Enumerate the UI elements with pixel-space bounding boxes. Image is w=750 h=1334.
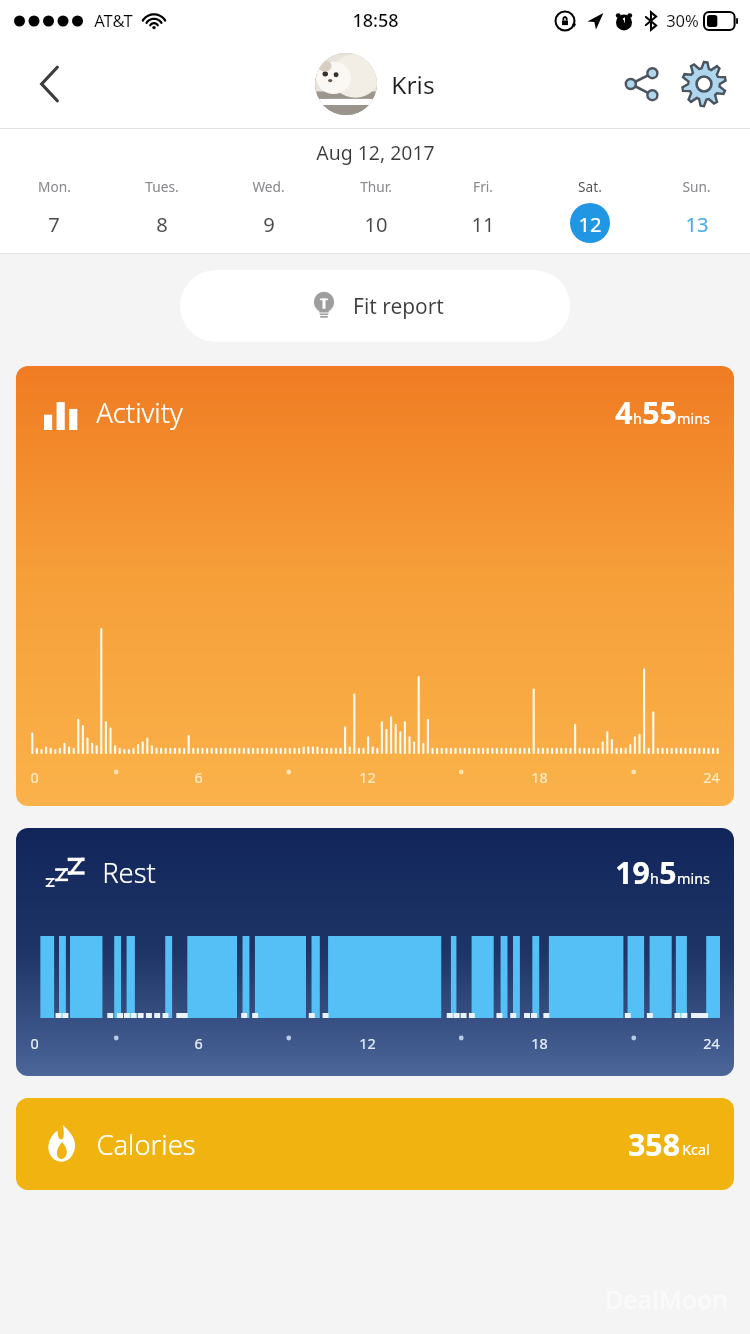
button[interactable]: Activity <box>16 366 734 806</box>
staticText: mins <box>677 869 710 889</box>
staticText: 24 <box>703 1034 720 1054</box>
button[interactable]: Mon. <box>0 177 108 243</box>
staticText: Kris <box>391 68 435 101</box>
staticText: 8 <box>156 210 168 237</box>
staticText: 24 <box>703 768 720 788</box>
staticText: Mon. <box>38 177 71 196</box>
staticText: 6 <box>194 768 203 788</box>
staticText: 12 <box>359 768 376 788</box>
staticText: Activity <box>96 394 183 431</box>
button[interactable]: Sun. <box>643 177 750 243</box>
button[interactable]: Fit report <box>180 270 570 342</box>
staticText: Tues. <box>145 177 179 196</box>
staticText: 19 <box>615 852 650 893</box>
button[interactable]: Back <box>22 56 78 112</box>
staticText: Sun. <box>682 177 711 196</box>
button[interactable]: Settings <box>674 54 734 114</box>
staticText: 0 <box>30 1034 39 1054</box>
staticText: Aug 12, 2017 <box>316 139 435 165</box>
staticText: Rest <box>102 854 156 891</box>
staticText: 9 <box>263 210 275 237</box>
staticText: 12 <box>578 210 602 237</box>
button[interactable]: Thur. <box>322 177 429 243</box>
staticText: 18 <box>531 1034 548 1054</box>
button[interactable]: Fri. <box>429 177 536 243</box>
staticText: 55 <box>642 392 677 433</box>
button[interactable]: Share <box>614 56 670 112</box>
staticText: 11 <box>471 210 495 237</box>
button[interactable]: Calories <box>16 1098 734 1190</box>
staticText: Calories <box>96 1126 196 1163</box>
staticText: Fit report <box>353 292 444 320</box>
staticText: mins <box>677 409 710 429</box>
staticText: Fri. <box>473 177 493 196</box>
staticText: 0 <box>30 768 39 788</box>
button[interactable]: Wed. <box>215 177 322 243</box>
staticText: 6 <box>194 1034 203 1054</box>
staticText: 12 <box>359 1034 376 1054</box>
staticText: 358 <box>628 1124 680 1165</box>
staticText: Thur. <box>360 177 392 196</box>
staticText: 13 <box>685 210 709 237</box>
staticText: 18 <box>531 768 548 788</box>
button[interactable]: Sat. <box>536 177 643 243</box>
staticText: 18:58 <box>352 8 399 33</box>
staticText: 30% <box>666 9 699 32</box>
staticText: h <box>633 409 642 429</box>
button[interactable]: Tues. <box>108 177 215 243</box>
staticText: 10 <box>364 210 388 237</box>
staticText: Kcal <box>682 1140 710 1160</box>
staticText: h <box>650 869 659 889</box>
staticText: Wed. <box>252 177 285 196</box>
staticText: AT&T <box>94 9 133 32</box>
staticText: 7 <box>48 210 60 237</box>
staticText: 4 <box>615 392 633 433</box>
button[interactable]: Kris <box>315 53 435 115</box>
button[interactable]: Rest <box>16 828 734 1076</box>
staticText: 5 <box>659 852 677 893</box>
staticText: Sat. <box>578 177 602 196</box>
